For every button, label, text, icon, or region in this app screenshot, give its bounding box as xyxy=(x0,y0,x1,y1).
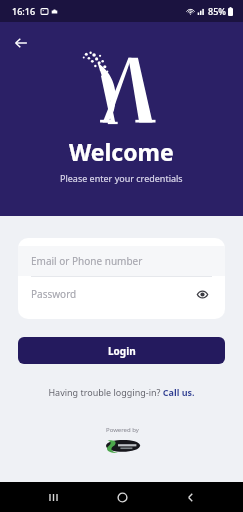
button[interactable]: Recents xyxy=(38,482,68,512)
button[interactable]: Email or Phone number xyxy=(18,246,225,276)
staticText: Login xyxy=(108,344,136,358)
staticText: Having trouble logging-in? Call us. xyxy=(48,386,195,398)
button[interactable]: Login xyxy=(18,337,225,364)
staticText: Password xyxy=(31,287,77,301)
button[interactable]: Home xyxy=(107,482,137,512)
button[interactable]: Having trouble logging-in? Call us. xyxy=(0,384,243,400)
staticText: Welcome xyxy=(69,136,174,167)
button[interactable]: Password xyxy=(18,277,225,310)
staticText: Email or Phone number xyxy=(31,254,143,268)
staticText: 85% xyxy=(208,5,226,17)
button[interactable]: Show password xyxy=(192,284,212,304)
button[interactable]: Back xyxy=(175,482,205,512)
staticText: Powered by xyxy=(106,426,139,434)
staticText: 16:16 xyxy=(12,5,36,17)
staticText: Please enter your credentials xyxy=(60,172,183,184)
button[interactable]: Back xyxy=(6,28,36,58)
